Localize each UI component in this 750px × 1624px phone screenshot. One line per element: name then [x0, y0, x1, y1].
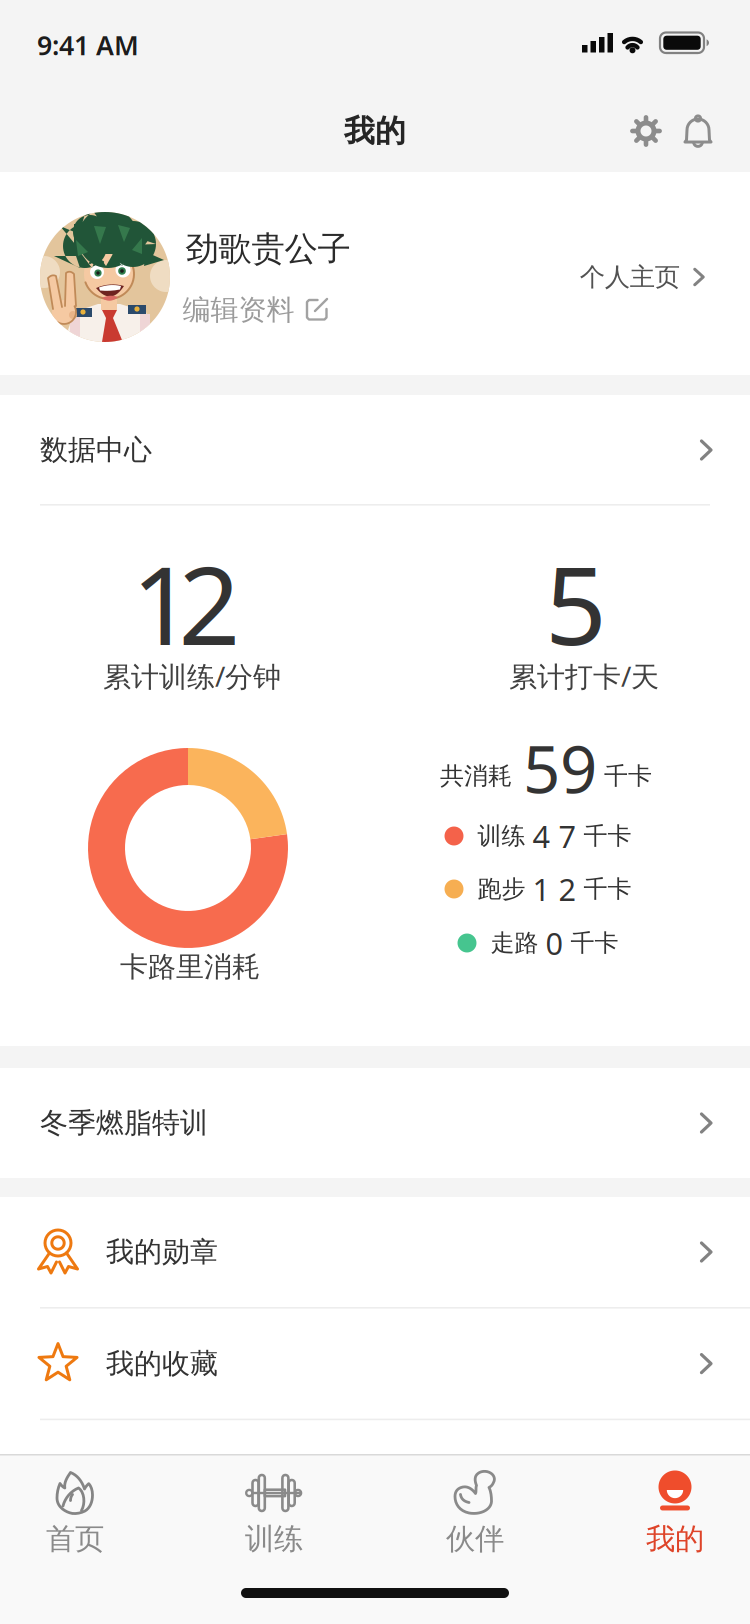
staticText: 5	[545, 531, 607, 675]
button[interactable]: 头像	[40, 212, 170, 342]
button[interactable]: 训练	[199, 1467, 349, 1557]
button[interactable]: 我的收藏	[0, 1309, 750, 1419]
staticText: 劲歌贵公子	[185, 228, 350, 269]
staticText: 千卡	[604, 761, 652, 791]
button[interactable]: 数据中心	[0, 395, 750, 505]
staticText: 累计训练/分钟	[103, 657, 281, 695]
staticText: 卡路里消耗	[120, 950, 260, 984]
staticText: 0	[545, 923, 563, 963]
staticText: 我的	[344, 112, 406, 150]
staticText: 我的勋章	[106, 1235, 218, 1269]
button[interactable]: 冬季燃脂特训	[0, 1068, 750, 1178]
staticText: 走路	[490, 928, 538, 958]
button[interactable]: 我的	[600, 1467, 750, 1557]
staticText: 跑步	[477, 874, 525, 904]
staticText: 个人主页	[580, 261, 680, 292]
staticText: 12	[131, 531, 240, 675]
staticText: 1 2	[532, 869, 576, 909]
staticText: 9:41 AM	[37, 27, 139, 63]
button[interactable]: 伙伴	[400, 1467, 550, 1557]
staticText: 训练	[477, 821, 525, 851]
staticText: 4 7	[532, 816, 576, 856]
staticText: 千卡	[570, 928, 618, 958]
staticText: 千卡	[583, 874, 631, 904]
staticText: 我的收藏	[106, 1346, 218, 1381]
staticText: 数据中心	[40, 433, 152, 467]
button[interactable]: 首页	[0, 1467, 150, 1557]
staticText: 首页	[46, 1521, 104, 1557]
staticText: 59	[523, 725, 597, 811]
staticText: 千卡	[583, 821, 631, 851]
button[interactable]: 个人主页	[580, 261, 706, 292]
staticText: 编辑资料	[182, 293, 294, 327]
button[interactable]: 通知	[676, 113, 720, 151]
button[interactable]: 设置	[624, 109, 668, 153]
staticText: 训练	[245, 1521, 303, 1557]
staticText: 累计打卡/天	[509, 657, 659, 695]
staticText: 我的	[646, 1521, 704, 1557]
button[interactable]: 我的勋章	[0, 1197, 750, 1307]
button[interactable]: 编辑资料	[182, 293, 329, 327]
staticText: 伙伴	[446, 1521, 504, 1557]
staticText: 冬季燃脂特训	[40, 1106, 208, 1140]
staticText: 共消耗	[440, 761, 512, 791]
